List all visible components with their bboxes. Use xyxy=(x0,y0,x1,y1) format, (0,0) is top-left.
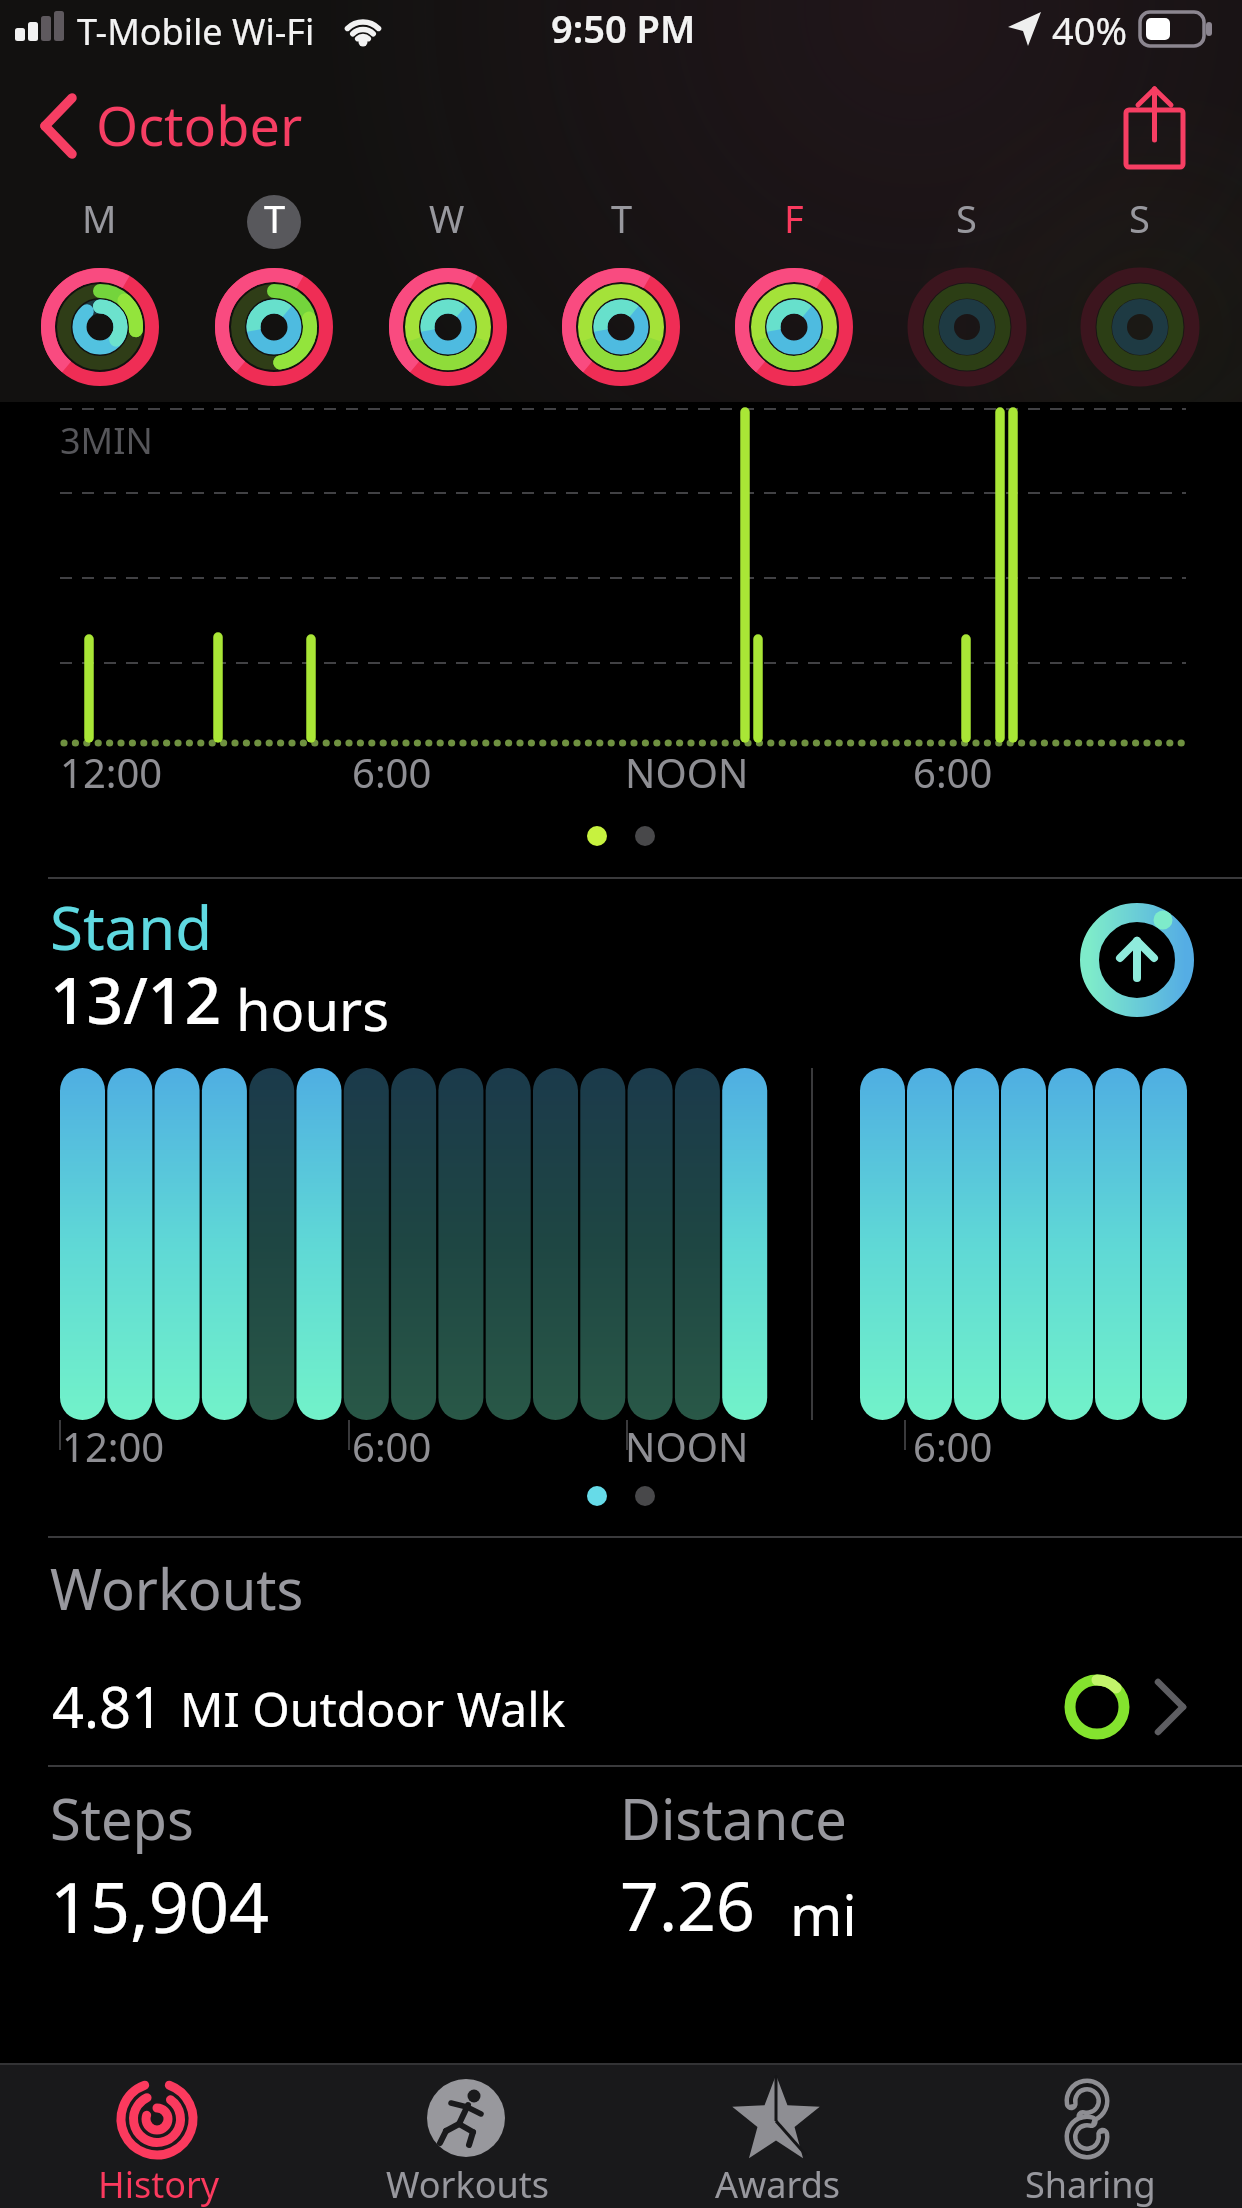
staticText: 6:00 xyxy=(913,745,993,799)
staticText: 6:00 xyxy=(352,745,432,799)
staticText: MI Outdoor Walk xyxy=(180,1676,566,1741)
button[interactable] xyxy=(0,2068,310,2208)
staticText: 40% xyxy=(1052,4,1128,56)
staticText: Awards xyxy=(715,2160,841,2208)
staticText: 15,904 xyxy=(50,1858,269,1953)
button[interactable] xyxy=(27,185,173,400)
button[interactable] xyxy=(1065,185,1211,400)
button[interactable] xyxy=(621,2068,932,2208)
staticText: W xyxy=(429,192,465,244)
staticText: T xyxy=(264,192,286,244)
staticText: 3MIN xyxy=(60,416,153,465)
staticText: Steps xyxy=(50,1780,194,1856)
staticText: 4.81 xyxy=(52,1668,164,1744)
staticText: 12:00 xyxy=(60,745,163,799)
button[interactable] xyxy=(0,1640,1242,1765)
staticText: mi xyxy=(790,1876,857,1952)
staticText: S xyxy=(956,192,977,244)
staticText: 13/12 xyxy=(50,956,222,1043)
button[interactable] xyxy=(892,185,1038,400)
button[interactable] xyxy=(1110,80,1220,180)
staticText: 9:50 PM xyxy=(551,2,696,54)
staticText: F xyxy=(784,192,804,244)
staticText: 7.26 xyxy=(620,1858,755,1951)
button[interactable] xyxy=(20,85,320,175)
staticText: hours xyxy=(236,971,390,1047)
button[interactable] xyxy=(932,2068,1242,2208)
staticText: NOON xyxy=(625,745,749,799)
staticText: M xyxy=(82,192,117,244)
staticText: T xyxy=(611,192,633,244)
staticText: Stand xyxy=(50,886,213,968)
staticText: S xyxy=(1129,192,1150,244)
button[interactable] xyxy=(719,185,865,400)
staticText: 6:00 xyxy=(913,1419,993,1473)
button[interactable] xyxy=(310,2068,621,2208)
staticText: Workouts xyxy=(50,1550,304,1626)
staticText: History xyxy=(98,2160,220,2208)
button[interactable] xyxy=(373,185,519,400)
staticText: Sharing xyxy=(1025,2160,1156,2208)
staticText: Distance xyxy=(620,1780,847,1856)
button[interactable] xyxy=(200,185,346,400)
staticText: 6:00 xyxy=(352,1419,432,1473)
staticText: NOON xyxy=(625,1419,749,1473)
staticText: October xyxy=(96,88,303,162)
staticText: T-Mobile Wi-Fi xyxy=(77,7,315,56)
staticText: 12:00 xyxy=(62,1419,165,1473)
button[interactable] xyxy=(546,185,692,400)
staticText: Workouts xyxy=(386,2160,549,2208)
